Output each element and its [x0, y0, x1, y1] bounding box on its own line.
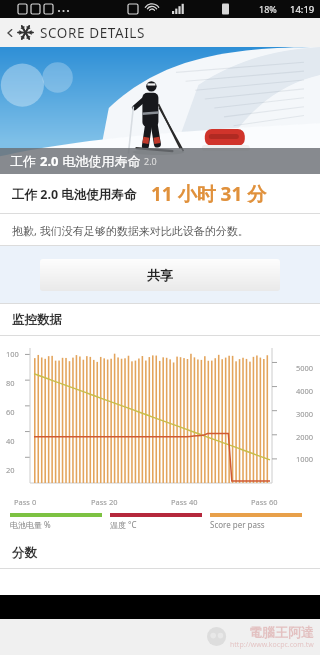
staticText: 2.0	[40, 152, 59, 170]
staticText: 抱歉, 我们没有足够的数据来对比此设备的分数。	[12, 223, 249, 238]
staticText: 工作 2.0 电池使用寿命	[12, 186, 137, 203]
staticText: 20	[6, 465, 15, 475]
staticText: 电池使用寿命	[59, 152, 144, 170]
staticText: 18%	[259, 3, 277, 15]
staticText: Pass 0	[14, 497, 37, 507]
staticText: 3000	[296, 409, 314, 419]
staticText: Score per pass	[210, 519, 265, 530]
staticText: Pass 60	[251, 497, 278, 507]
staticText: 4000	[296, 386, 314, 396]
staticText: 14:19	[290, 3, 315, 16]
staticText: 100	[6, 349, 19, 359]
staticText: 2.0	[144, 155, 157, 167]
button[interactable]: Back	[3, 21, 17, 45]
button[interactable]: 共享	[40, 259, 280, 291]
staticText: 监控数据	[12, 312, 62, 328]
staticText: 1000	[296, 454, 314, 464]
staticText: 11 小时 31 分	[151, 181, 267, 207]
staticText: 分数	[12, 545, 37, 561]
staticText: Pass 40	[171, 497, 198, 507]
staticText: 5000	[296, 363, 314, 373]
staticText: 40	[6, 436, 15, 446]
staticText: SCORE DETAILS	[40, 24, 146, 42]
staticText: 共享	[147, 267, 173, 283]
staticText: 80	[6, 378, 15, 388]
staticText: 2000	[296, 432, 314, 442]
staticText: 60	[6, 407, 15, 417]
staticText: 温度 °C	[110, 519, 137, 530]
staticText: 電腦王阿達	[249, 624, 314, 640]
staticText: 工作	[10, 152, 40, 170]
staticText: 电池电量 %	[10, 519, 51, 530]
staticText: http://www.kocpc.com.tw	[230, 640, 314, 650]
staticText: Pass 20	[91, 497, 118, 507]
